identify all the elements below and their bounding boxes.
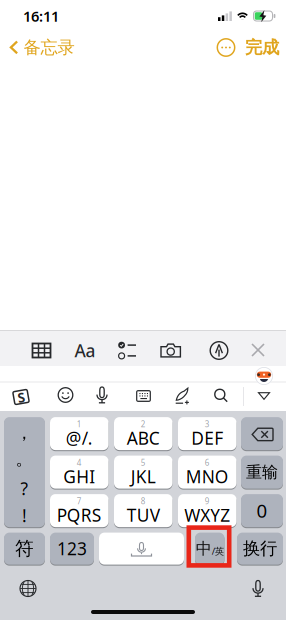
button[interactable]: 备忘录 xyxy=(9,37,74,58)
staticText: PQRS xyxy=(57,504,102,527)
button[interactable]: Emoji xyxy=(57,387,73,403)
button[interactable]: Checklist xyxy=(118,341,136,359)
staticText: 6 xyxy=(205,457,210,468)
button[interactable]: 4 xyxy=(50,456,108,489)
button[interactable]: 中 xyxy=(195,533,224,565)
button[interactable]: 重输 xyxy=(241,456,283,489)
staticText: ? xyxy=(20,477,28,500)
staticText: 3 xyxy=(205,419,210,429)
button[interactable]: Dismiss keyboard bar xyxy=(251,343,264,356)
button[interactable]: 1 xyxy=(50,417,108,450)
staticText: JKL xyxy=(131,465,156,488)
staticText: 换行 xyxy=(243,538,277,559)
staticText: 符 xyxy=(15,537,34,560)
button[interactable]: Hide keyboard xyxy=(258,392,270,400)
staticText: 中 xyxy=(196,539,212,558)
button[interactable]: 3 xyxy=(178,417,236,450)
staticText: 9 xyxy=(205,496,210,506)
staticText: WXYZ xyxy=(184,504,230,527)
button[interactable]: Dictate xyxy=(251,579,264,597)
button[interactable]: Format xyxy=(74,339,95,362)
button[interactable]: Handwriting xyxy=(174,387,189,405)
staticText: Aa xyxy=(74,339,95,362)
staticText: 5 xyxy=(141,457,146,468)
staticText: 。 xyxy=(15,448,32,470)
staticText: 2 xyxy=(141,419,146,429)
button[interactable]: 5 xyxy=(114,456,172,489)
button[interactable]: More xyxy=(216,38,235,57)
staticText: 备忘录 xyxy=(23,37,74,58)
staticText: 123 xyxy=(57,537,87,560)
staticText: GHI xyxy=(63,465,95,488)
button[interactable]: Space xyxy=(99,533,184,565)
staticText: /英 xyxy=(212,545,224,557)
staticText: 8 xyxy=(141,496,146,506)
button[interactable]: Delete xyxy=(241,417,283,450)
button[interactable]: 7 xyxy=(50,494,108,527)
button[interactable]: ， xyxy=(4,417,45,527)
staticText: ABC xyxy=(127,427,160,450)
staticText: 完成 xyxy=(245,37,279,58)
staticText: MNO xyxy=(186,465,229,488)
button[interactable]: 符 xyxy=(4,533,45,565)
button[interactable]: Keyboard layout xyxy=(136,390,151,402)
button[interactable]: Insert table xyxy=(31,342,51,358)
staticText: 1 xyxy=(77,419,82,429)
staticText: 16:11 xyxy=(23,6,59,26)
button[interactable]: 2 xyxy=(114,417,172,450)
button[interactable]: 换行 xyxy=(237,533,283,565)
button[interactable]: Markup xyxy=(209,341,228,360)
staticText: S xyxy=(17,388,24,406)
staticText: 4 xyxy=(77,457,82,468)
button[interactable]: Next keyboard xyxy=(19,580,36,597)
button[interactable]: 9 xyxy=(178,494,236,527)
button[interactable]: 0 xyxy=(241,494,283,527)
staticText: TUV xyxy=(127,504,160,527)
staticText: 7 xyxy=(77,496,82,506)
button[interactable]: Sogou xyxy=(12,388,30,405)
button[interactable]: 8 xyxy=(114,494,172,527)
button[interactable]: 完成 xyxy=(245,37,279,58)
button[interactable]: Camera xyxy=(160,342,181,359)
button[interactable]: Search xyxy=(214,388,228,402)
staticText: DEF xyxy=(191,427,223,450)
staticText: ， xyxy=(15,422,32,444)
button[interactable]: 6 xyxy=(178,456,236,489)
staticText: 0 xyxy=(256,498,267,523)
button[interactable]: 123 xyxy=(50,533,94,565)
button[interactable]: Voice input xyxy=(95,386,108,404)
staticText: 重输 xyxy=(246,462,278,482)
staticText: @/. xyxy=(66,427,93,450)
staticText: ! xyxy=(22,504,27,527)
